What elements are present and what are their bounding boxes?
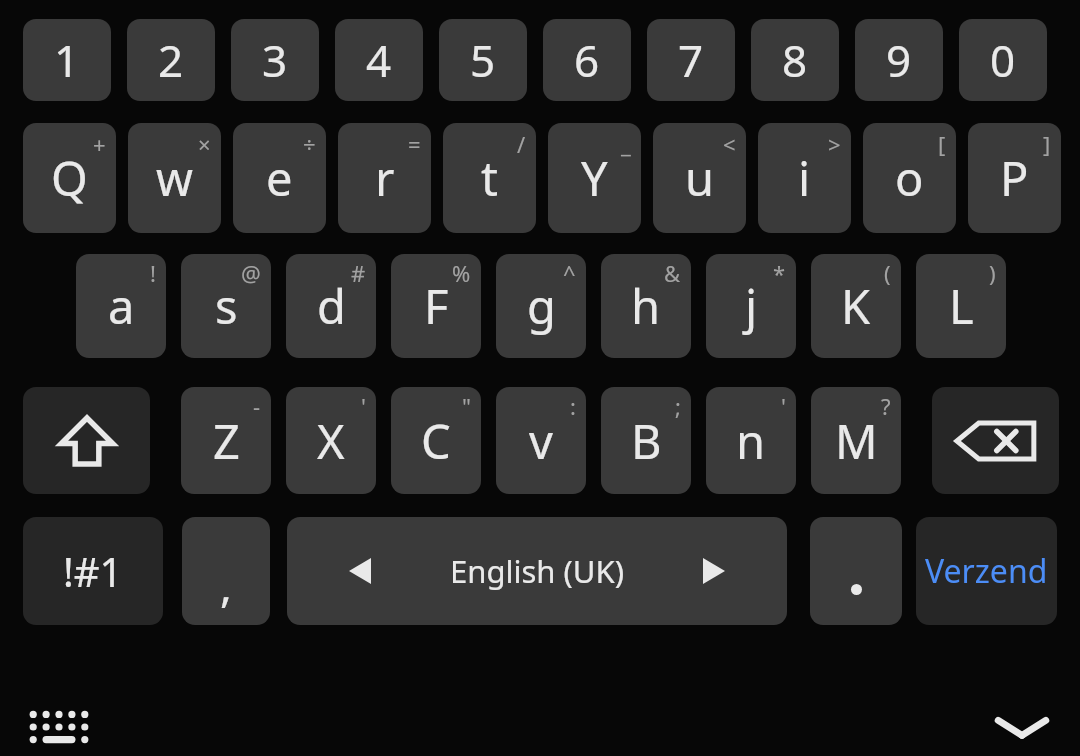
button[interactable]: Backspace (932, 387, 1059, 494)
button[interactable]: 8 (751, 19, 839, 101)
button[interactable]: v (496, 387, 586, 494)
button[interactable]: X (286, 387, 376, 494)
button[interactable]: Verzend (916, 517, 1057, 625)
button[interactable]: n (706, 387, 796, 494)
button[interactable]: Hide keyboard (982, 698, 1062, 756)
staticText: Z (213, 409, 240, 473)
button[interactable]: Space (287, 517, 787, 625)
staticText: j (745, 274, 758, 338)
button[interactable]: 0 (959, 19, 1047, 101)
staticText: # (351, 258, 366, 288)
button[interactable]: 4 (335, 19, 423, 101)
button[interactable]: j (706, 254, 796, 358)
button[interactable]: B (601, 387, 691, 494)
staticText: 6 (574, 30, 600, 90)
staticText: * (773, 258, 786, 288)
button[interactable]: Z (181, 387, 271, 494)
staticText: _ (621, 129, 631, 159)
staticText: 0 (990, 30, 1016, 90)
staticText: u (685, 146, 715, 210)
staticText: F (424, 274, 449, 338)
button[interactable]: g (496, 254, 586, 358)
button[interactable]: M (811, 387, 901, 494)
staticText: s (215, 274, 238, 338)
staticText: ' (361, 391, 366, 421)
button[interactable]: t (443, 123, 536, 233)
staticText: , (220, 555, 232, 615)
staticText: 7 (678, 30, 704, 90)
button[interactable]: 3 (231, 19, 319, 101)
staticText: English (UK) (450, 550, 624, 592)
button[interactable]: Y (548, 123, 641, 233)
button[interactable]: F (391, 254, 481, 358)
staticText: t (481, 146, 498, 210)
staticText: [ (938, 129, 946, 159)
staticText: = (408, 129, 421, 159)
staticText: < (723, 129, 736, 159)
staticText: P (1000, 146, 1029, 210)
button[interactable]: s (181, 254, 271, 358)
button[interactable]: u (653, 123, 746, 233)
staticText: 2 (158, 30, 184, 90)
staticText: 5 (470, 30, 496, 90)
staticText: v (529, 409, 553, 473)
button[interactable]: o (863, 123, 956, 233)
button[interactable]: r (338, 123, 431, 233)
staticText: 1 (54, 30, 80, 90)
staticText: C (421, 409, 451, 473)
button[interactable]: C (391, 387, 481, 494)
staticText: ? (881, 391, 891, 421)
staticText: 8 (782, 30, 808, 90)
staticText: ) (989, 258, 996, 288)
staticText: " (462, 391, 471, 421)
staticText: K (841, 274, 871, 338)
staticText: @ (241, 258, 261, 288)
button[interactable]: Symbols (23, 517, 163, 625)
button[interactable]: a (76, 254, 166, 358)
button[interactable]: 1 (23, 19, 111, 101)
staticText: : (570, 391, 576, 421)
staticText: - (253, 391, 261, 421)
button[interactable]: 7 (647, 19, 735, 101)
button[interactable]: d (286, 254, 376, 358)
button[interactable]: P (968, 123, 1061, 233)
button[interactable]: Q (23, 123, 116, 233)
staticText: L (949, 274, 974, 338)
staticText: X (317, 409, 345, 473)
staticText: ] (1043, 129, 1051, 159)
button[interactable]: e (233, 123, 326, 233)
staticText: × (198, 129, 211, 159)
button[interactable]: i (758, 123, 851, 233)
button[interactable]: Comma (182, 517, 270, 625)
staticText: w (156, 146, 193, 210)
staticText: % (452, 258, 471, 288)
button[interactable]: h (601, 254, 691, 358)
staticText: & (664, 258, 681, 288)
staticText: Y (581, 146, 608, 210)
staticText: !#1 (63, 544, 123, 598)
staticText: 3 (262, 30, 288, 90)
staticText: e (266, 146, 293, 210)
staticText: / (517, 129, 526, 159)
button[interactable]: Shift (23, 387, 150, 494)
staticText: n (736, 409, 766, 473)
staticText: 9 (886, 30, 912, 90)
button[interactable]: 5 (439, 19, 527, 101)
button[interactable]: w (128, 123, 221, 233)
staticText: r (375, 146, 395, 210)
staticText: ' (781, 391, 786, 421)
staticText: Q (51, 146, 88, 210)
staticText: g (527, 274, 556, 338)
staticText: 4 (366, 30, 392, 90)
button[interactable]: 2 (127, 19, 215, 101)
button[interactable]: Period (810, 517, 902, 625)
staticText: B (631, 409, 662, 473)
button[interactable]: Switch keyboard (16, 697, 102, 756)
staticText: Verzend (925, 549, 1048, 593)
staticText: i (798, 146, 811, 210)
button[interactable]: 6 (543, 19, 631, 101)
button[interactable]: L (916, 254, 1006, 358)
button[interactable]: K (811, 254, 901, 358)
staticText: ^ (563, 258, 576, 288)
button[interactable]: 9 (855, 19, 943, 101)
